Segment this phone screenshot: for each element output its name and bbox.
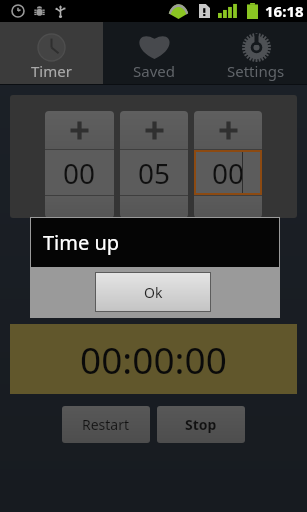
button[interactable]: 05 bbox=[120, 150, 188, 195]
button[interactable]: Decrement bbox=[194, 196, 262, 218]
staticText: Time up bbox=[43, 229, 120, 256]
staticText: Settings bbox=[227, 61, 285, 81]
button[interactable]: Saved bbox=[103, 22, 205, 84]
button[interactable]: Increment bbox=[120, 111, 188, 149]
staticText: Ok bbox=[144, 283, 163, 302]
button[interactable]: Increment bbox=[45, 111, 114, 149]
button[interactable]: Decrement bbox=[120, 196, 188, 218]
button[interactable]: Increment bbox=[194, 111, 262, 149]
button[interactable]: Timer bbox=[0, 22, 103, 84]
staticText: Timer bbox=[31, 61, 72, 81]
button[interactable]: Settings bbox=[205, 22, 307, 84]
staticText: Restart bbox=[82, 415, 130, 434]
button[interactable]: Decrement bbox=[45, 196, 114, 218]
button[interactable]: 00 bbox=[45, 150, 114, 195]
button[interactable]: 00 bbox=[196, 152, 260, 193]
staticText: Stop bbox=[185, 415, 217, 434]
button[interactable]: Restart bbox=[62, 406, 150, 443]
staticText: 00 bbox=[212, 154, 245, 192]
staticText: Saved bbox=[133, 61, 175, 81]
staticText: 00:00:00 bbox=[80, 334, 227, 384]
staticText: 16:18 bbox=[265, 1, 304, 21]
staticText: 00 bbox=[63, 154, 96, 192]
button[interactable]: Ok bbox=[96, 273, 210, 311]
staticText: 05 bbox=[138, 154, 171, 192]
button[interactable]: Stop bbox=[157, 406, 245, 443]
